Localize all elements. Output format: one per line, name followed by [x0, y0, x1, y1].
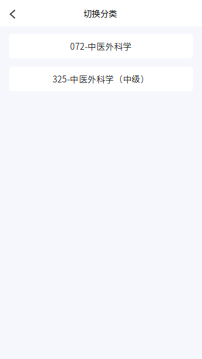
button[interactable]: Back	[0, 0, 21, 26]
button[interactable]: 325-中医外科学（中级）	[9, 67, 193, 91]
button[interactable]: 072-中医外科学	[9, 34, 193, 58]
staticText: 325-中医外科学（中级）	[52, 73, 150, 85]
staticText: 切换分类	[84, 7, 116, 19]
staticText: 072-中医外科学	[70, 40, 132, 52]
